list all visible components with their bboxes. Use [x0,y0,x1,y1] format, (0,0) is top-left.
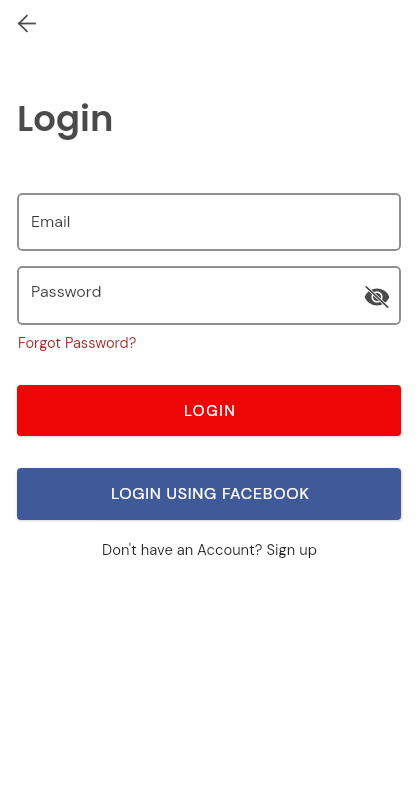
staticText: Login [17,94,114,144]
button[interactable]: LOGIN USING FACEBOOK [17,468,401,520]
staticText: Password [31,281,102,302]
button[interactable]: Back [7,4,45,42]
staticText: LOGIN USING FACEBOOK [111,483,310,504]
button[interactable]: Password [17,266,401,325]
button[interactable]: Show password [362,282,392,312]
staticText: LOGIN [184,401,237,421]
button[interactable]: Forgot Password? [18,334,137,353]
button[interactable]: Email [17,193,401,251]
button[interactable]: LOGIN [17,385,401,436]
staticText: Email [31,211,71,232]
button[interactable]: Don't have an Account? Sign up [102,540,317,559]
